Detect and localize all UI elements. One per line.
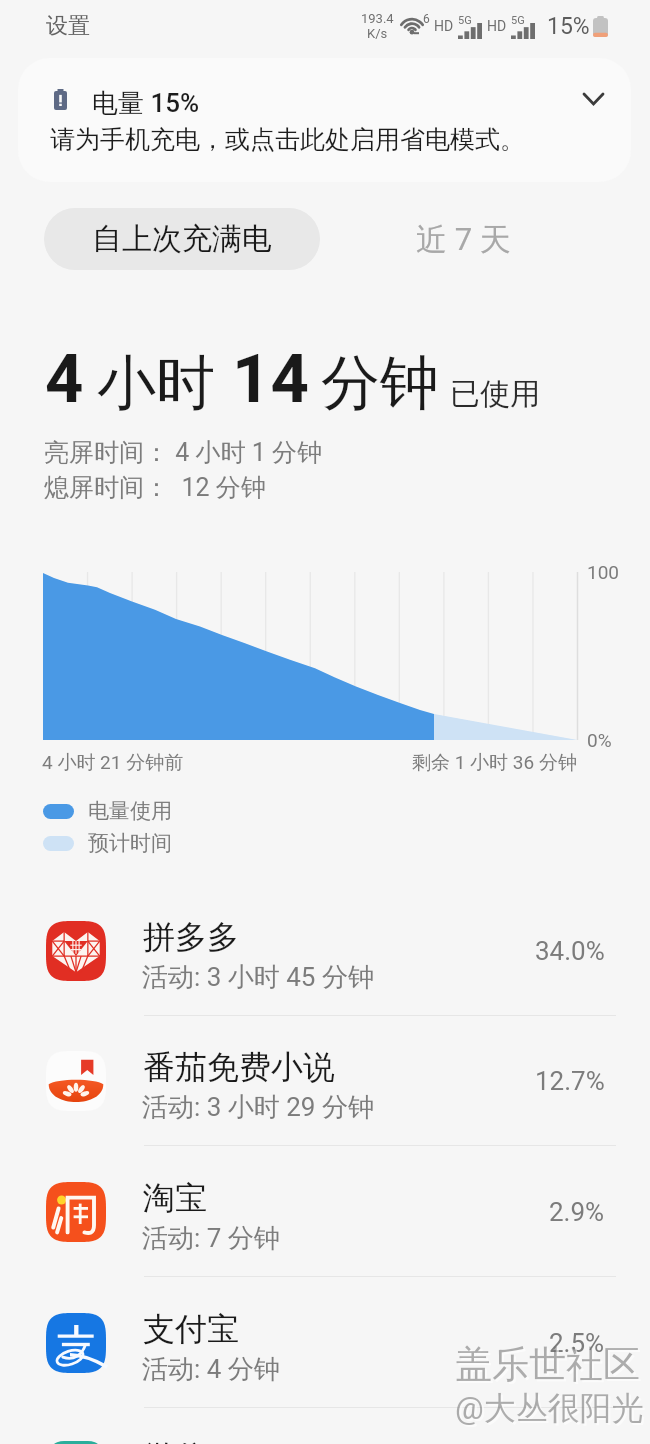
staticText: 2.9%: [549, 1197, 605, 1227]
staticText: HD: [434, 18, 454, 34]
staticText: 活动: 3 小时 29 分钟: [142, 1091, 374, 1124]
staticText: 6: [423, 12, 430, 26]
staticText: 14: [232, 340, 309, 419]
button[interactable]: 近 7 天: [348, 208, 578, 270]
staticText: 12.7%: [535, 1066, 605, 1096]
staticText: 微信: [143, 1437, 207, 1444]
staticText: @大丛很阳光: [457, 1390, 646, 1430]
staticText: 近 7 天: [416, 220, 511, 259]
staticText: 淘宝: [143, 1178, 207, 1218]
staticText: 15%: [547, 13, 590, 40]
staticText: 活动: 3 小时 45 分钟: [142, 961, 374, 994]
staticText: 预计时间: [88, 830, 172, 856]
staticText: 活动: 4 分钟: [142, 1353, 280, 1386]
staticText: 4: [45, 340, 84, 419]
staticText: 小时: [97, 346, 215, 420]
staticText: 4 小时 21 分钟前: [42, 751, 184, 775]
staticText: 设置: [46, 12, 90, 40]
staticText: 请为手机充电，或点击此处启用省电模式。: [50, 124, 525, 155]
staticText: 已使用: [450, 375, 540, 413]
staticText: 5G: [511, 14, 525, 27]
button[interactable]: 番茄免费小说: [0, 1016, 650, 1146]
staticText: 剩余 1 小时 36 分钟: [412, 751, 577, 775]
staticText: 活动: 7 分钟: [142, 1222, 280, 1255]
staticText: 0%: [587, 729, 612, 751]
button[interactable]: 自上次充满电: [44, 208, 320, 270]
button[interactable]: 淘宝: [0, 1147, 650, 1277]
staticText: 亮屏时间： 4 小时 1 分钟: [44, 437, 322, 468]
staticText: 34.0%: [535, 936, 605, 966]
staticText: 5G: [458, 14, 472, 27]
button[interactable]: 拼多多: [0, 886, 650, 1016]
button[interactable]: 展开: [563, 69, 623, 129]
button[interactable]: 电量 15%: [18, 58, 631, 182]
staticText: @大丛很阳光: [455, 1388, 644, 1428]
staticText: 电量使用: [88, 798, 172, 824]
button[interactable]: 支付宝: [0, 1278, 650, 1408]
button[interactable]: 微信: [0, 1408, 650, 1444]
staticText: 自上次充满电: [92, 220, 272, 258]
staticText: 100: [587, 561, 620, 583]
staticText: HD: [487, 18, 507, 34]
staticText: 熄屏时间： 12 分钟: [44, 472, 266, 503]
staticText: 电量 15%: [92, 87, 200, 120]
staticText: 拼多多: [143, 917, 239, 957]
staticText: 盖乐世社区: [457, 1343, 642, 1390]
staticText: 分钟: [321, 346, 439, 420]
staticText: 2.5%: [549, 1328, 605, 1358]
staticText: 193.4: [361, 11, 394, 26]
staticText: 盖乐世社区: [455, 1341, 640, 1388]
staticText: 番茄免费小说: [143, 1047, 335, 1087]
staticText: 支付宝: [143, 1309, 239, 1349]
staticText: K/s: [367, 26, 388, 41]
